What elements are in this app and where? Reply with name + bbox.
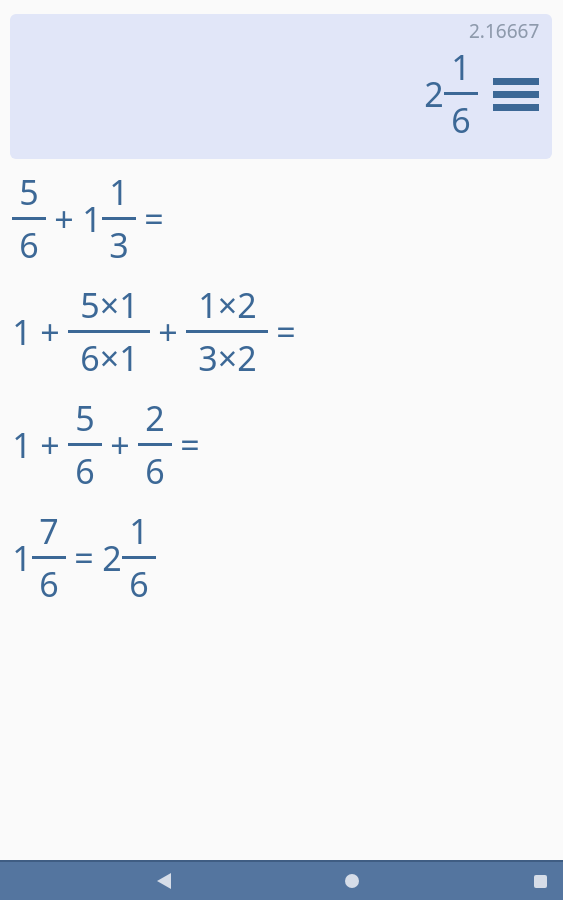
staticText: 2.16667 xyxy=(469,18,540,44)
staticText: 5 xyxy=(19,169,39,215)
staticText: = xyxy=(276,309,296,355)
staticText: 1 xyxy=(12,422,32,468)
staticText: 1 xyxy=(451,44,471,90)
staticText: 3×2 xyxy=(198,335,257,381)
staticText: 3 xyxy=(109,222,129,268)
staticText: + xyxy=(40,422,60,468)
staticText: 1 xyxy=(109,169,129,215)
staticText: 6×1 xyxy=(80,335,139,381)
staticText: = xyxy=(180,422,200,468)
staticText: 6 xyxy=(75,448,95,494)
button[interactable]: Menu xyxy=(490,69,542,119)
staticText: 1 xyxy=(12,309,32,355)
staticText: + xyxy=(54,196,74,242)
staticText: 2 xyxy=(102,535,122,581)
staticText: + xyxy=(110,422,130,468)
staticText: 1 xyxy=(12,535,32,581)
staticText: 2 xyxy=(424,71,444,117)
staticText: 5×1 xyxy=(80,282,139,328)
staticText: 7 xyxy=(39,508,59,554)
staticText: = xyxy=(144,196,164,242)
staticText: = xyxy=(74,535,94,581)
staticText: 6 xyxy=(19,222,39,268)
staticText: 1 xyxy=(129,508,149,554)
staticText: 6 xyxy=(129,561,149,607)
button[interactable]: Back xyxy=(141,862,187,900)
button[interactable]: Recents xyxy=(517,862,563,900)
staticText: 1×2 xyxy=(198,282,257,328)
staticText: 6 xyxy=(39,561,59,607)
button[interactable]: Home xyxy=(329,862,375,900)
staticText: 5 xyxy=(75,395,95,441)
staticText: + xyxy=(40,309,60,355)
staticText: 2 xyxy=(145,395,165,441)
staticText: 6 xyxy=(145,448,165,494)
staticText: 6 xyxy=(451,97,471,143)
staticText: 1 xyxy=(82,196,102,242)
button[interactable]: 2.16667 xyxy=(10,14,552,159)
staticText: + xyxy=(158,309,178,355)
